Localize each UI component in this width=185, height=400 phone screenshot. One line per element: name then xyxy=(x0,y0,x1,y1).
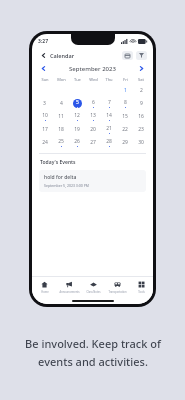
staticText: 3:27 xyxy=(38,38,48,45)
button[interactable]: 4 xyxy=(53,97,69,110)
button[interactable]: List view xyxy=(122,51,133,60)
staticText: 21 xyxy=(106,125,112,132)
staticText: 27 xyxy=(90,139,96,146)
staticText: Today's Events xyxy=(40,159,76,166)
button[interactable]: 22 xyxy=(117,123,133,136)
button[interactable]: Next month xyxy=(137,64,146,73)
staticText: 9 xyxy=(140,100,143,107)
button[interactable]: Home xyxy=(32,277,57,297)
button[interactable]: 27 xyxy=(85,136,101,149)
staticText: 17 xyxy=(42,126,48,133)
staticText: 12 xyxy=(74,112,80,119)
staticText: Fri xyxy=(123,77,128,82)
staticText: 10 xyxy=(42,112,48,119)
button[interactable]: 3 xyxy=(36,97,53,110)
staticText: September 2023 xyxy=(69,65,116,73)
button[interactable]: Announcements xyxy=(57,277,81,297)
staticText: Transportation xyxy=(108,290,127,294)
button[interactable]: hold for delta xyxy=(39,170,146,192)
button[interactable]: 15 xyxy=(117,110,133,123)
button[interactable]: Transportation xyxy=(105,277,129,297)
button[interactable]: 16 xyxy=(133,110,149,123)
button[interactable]: 5 xyxy=(69,97,85,110)
button[interactable]: 26 xyxy=(69,136,85,149)
staticText: Home xyxy=(41,290,49,294)
button[interactable]: 2 xyxy=(133,84,149,97)
button[interactable]: 1 xyxy=(117,84,133,97)
button[interactable]: Back xyxy=(38,50,48,60)
button[interactable]: Class Notes xyxy=(81,277,105,297)
button[interactable]: 29 xyxy=(117,136,133,149)
staticText: September 5, 2023 3:00 PM xyxy=(44,183,89,188)
button[interactable]: 20 xyxy=(85,123,101,136)
button[interactable]: 23 xyxy=(133,123,149,136)
staticText: 26 xyxy=(74,138,80,145)
button[interactable]: 17 xyxy=(36,123,53,136)
staticText: 5 xyxy=(76,99,79,106)
staticText: 20 xyxy=(90,126,96,133)
staticText: Sat xyxy=(138,77,144,82)
staticText: 2 xyxy=(140,87,143,94)
button[interactable]: 9 xyxy=(133,97,149,110)
staticText: 7 xyxy=(108,99,111,106)
staticText: events and activities. xyxy=(38,354,148,369)
staticText: 3 xyxy=(43,100,46,107)
button[interactable]: 18 xyxy=(53,123,69,136)
staticText: Sun xyxy=(41,77,49,82)
staticText: 8 xyxy=(124,99,127,106)
button[interactable]: 19 xyxy=(69,123,85,136)
button[interactable]: 6 xyxy=(85,97,101,110)
button[interactable]: 8 xyxy=(117,97,133,110)
button[interactable]: 7 xyxy=(101,97,117,110)
staticText: 30 xyxy=(138,139,144,146)
staticText: 1 xyxy=(124,87,127,94)
staticText: 28 xyxy=(106,138,112,145)
staticText: 25 xyxy=(58,138,64,145)
staticText: 13 xyxy=(90,112,96,119)
staticText: 14 xyxy=(106,112,112,119)
staticText: Mon xyxy=(57,77,66,82)
staticText: Calendar xyxy=(50,52,75,59)
button[interactable]: 30 xyxy=(133,136,149,149)
button[interactable]: Filter xyxy=(136,51,147,60)
staticText: hold for delta xyxy=(44,174,77,181)
button[interactable]: Tools xyxy=(129,277,153,297)
staticText: 29 xyxy=(122,139,128,146)
button[interactable]: 13 xyxy=(85,110,101,123)
button[interactable]: 14 xyxy=(101,110,117,123)
staticText: 4 xyxy=(60,100,63,107)
staticText: Announcements xyxy=(59,290,80,294)
button[interactable]: 10 xyxy=(36,110,53,123)
button[interactable]: 24 xyxy=(36,136,53,149)
staticText: 24 xyxy=(42,139,48,146)
staticText: Class Notes xyxy=(86,290,101,294)
button[interactable]: 12 xyxy=(69,110,85,123)
staticText: 6 xyxy=(92,99,95,106)
staticText: 19 xyxy=(74,126,80,133)
button[interactable]: 28 xyxy=(101,136,117,149)
staticText: 15 xyxy=(122,113,128,120)
staticText: 11 xyxy=(58,113,64,120)
staticText: Thu xyxy=(105,77,113,82)
button[interactable]: 11 xyxy=(53,110,69,123)
staticText: 18 xyxy=(58,126,64,133)
button[interactable]: 25 xyxy=(53,136,69,149)
button[interactable]: 21 xyxy=(101,123,117,136)
staticText: Wed xyxy=(89,77,98,82)
staticText: 22 xyxy=(122,126,128,133)
staticText: Tools xyxy=(138,290,145,294)
staticText: 23 xyxy=(138,126,144,133)
button[interactable]: Previous month xyxy=(39,64,48,73)
staticText: Tue xyxy=(74,77,81,82)
staticText: 16 xyxy=(138,113,144,120)
staticText: Be involved. Keep track of xyxy=(25,336,161,351)
